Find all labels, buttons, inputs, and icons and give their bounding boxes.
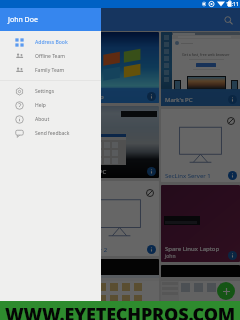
button[interactable]: About [0, 112, 101, 126]
button[interactable]: Info [147, 245, 156, 254]
button[interactable]: Offline [146, 189, 154, 197]
staticText: Help [35, 102, 46, 109]
button[interactable]: Offline [161, 109, 240, 182]
staticText: Spare Linux Laptop [165, 245, 220, 253]
button[interactable]: Family Team [0, 63, 101, 77]
staticText: Address Book [35, 39, 68, 46]
staticText: Mark's PC [165, 96, 193, 104]
button[interactable]: Get a fast, free web browser [161, 32, 240, 106]
staticText: Laptop [84, 93, 104, 101]
button[interactable]: Info [228, 171, 237, 180]
staticText: Settings [35, 88, 55, 95]
button[interactable]: Help [0, 98, 101, 112]
button[interactable]: Info [147, 92, 156, 101]
staticText: Gary PC [84, 168, 107, 176]
button[interactable]: Home PC [0, 32, 78, 100]
button[interactable]: Info [147, 167, 156, 176]
button[interactable]: Spare Linux Laptop [161, 185, 240, 262]
button[interactable]: Info [228, 95, 237, 104]
button[interactable]: Gary PC [80, 106, 159, 178]
button[interactable]: Search [221, 13, 235, 27]
button[interactable]: Address Book [0, 35, 101, 49]
staticText: john [165, 253, 176, 260]
staticText: Family Team [35, 67, 65, 74]
button[interactable]: Offline [0, 103, 78, 177]
staticText: About [35, 116, 50, 123]
staticText: SecLinx Server 1 [165, 172, 211, 180]
button[interactable]: Add computer [217, 282, 235, 300]
button[interactable]: Offline [227, 117, 235, 125]
button[interactable]: Offline [80, 181, 159, 256]
staticText: Server 2 [84, 246, 108, 254]
button[interactable] [161, 265, 240, 320]
button[interactable]: Offline Team [0, 49, 101, 63]
staticText: John Doe [8, 15, 38, 25]
staticText: Send feedback [35, 130, 70, 137]
staticText: WWW.EYETECHPROS.COM [5, 302, 235, 320]
staticText: Get a fast, free web browser [182, 52, 230, 57]
button[interactable]: Laptop [80, 32, 159, 103]
staticText: 11:11 [226, 1, 239, 8]
button[interactable]: Info [228, 251, 237, 260]
staticText: Home PC [4, 90, 31, 98]
button[interactable]: Send feedback [0, 126, 101, 140]
button[interactable] [80, 259, 159, 320]
staticText: Offline Team [35, 53, 65, 60]
button[interactable] [0, 253, 78, 313]
button[interactable]: Settings [0, 84, 101, 98]
